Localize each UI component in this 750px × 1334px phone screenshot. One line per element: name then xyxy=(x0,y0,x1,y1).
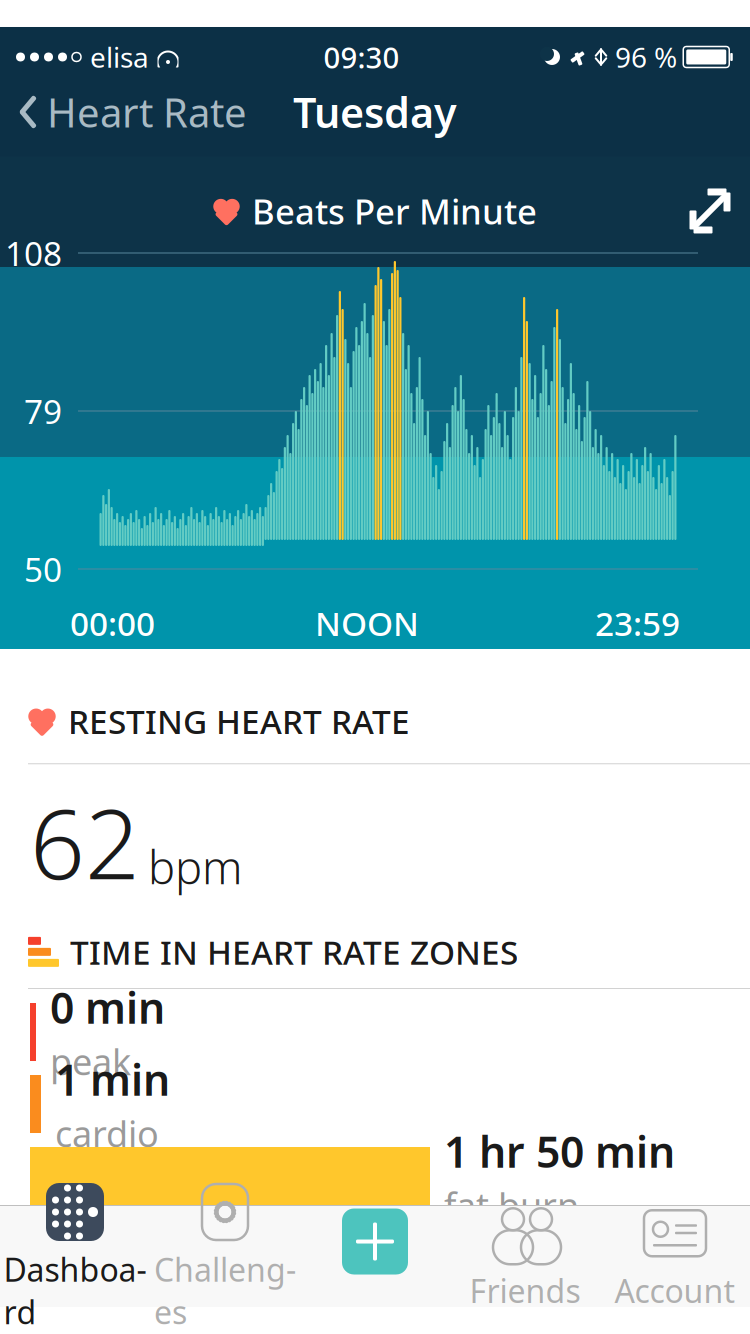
staticText: Challenges xyxy=(154,1248,296,1333)
staticText: 00:00 xyxy=(70,601,155,645)
button[interactable]: Account xyxy=(600,1193,750,1320)
staticText: peak xyxy=(50,1037,131,1085)
button[interactable]: Heart Rate xyxy=(0,77,247,146)
staticText: elisa xyxy=(90,38,149,76)
staticText: Beats Per Minute xyxy=(252,188,537,234)
staticText: bpm xyxy=(148,836,243,897)
staticText: cardio xyxy=(55,1109,159,1157)
staticText: Heart Rate xyxy=(47,85,247,138)
button[interactable]: Challenges xyxy=(150,1172,300,1334)
staticText: 1 min xyxy=(55,1051,170,1107)
staticText: 108 xyxy=(5,231,62,275)
button[interactable]: Add xyxy=(300,1201,450,1311)
staticText: Friends xyxy=(469,1269,580,1312)
staticText: 62 xyxy=(30,778,140,906)
staticText: 50 xyxy=(24,547,62,591)
staticText: 09:30 xyxy=(323,37,399,76)
staticText: 23:59 xyxy=(595,601,680,645)
staticText: RESTING HEART RATE xyxy=(68,699,410,743)
staticText: Tuesday xyxy=(293,84,457,139)
staticText: TIME IN HEART RATE ZONES xyxy=(70,930,518,974)
staticText: Account xyxy=(614,1269,735,1312)
staticText: 96 % xyxy=(615,38,677,76)
staticText: Dashboard xyxy=(3,1248,146,1333)
staticText: fat burn xyxy=(444,1181,579,1229)
staticText: 1 hr 50 min xyxy=(444,1123,675,1179)
button[interactable]: Friends xyxy=(450,1193,600,1320)
button[interactable]: Expand chart xyxy=(688,183,750,239)
staticText: NOON xyxy=(315,601,419,645)
staticText: 0 min xyxy=(50,979,165,1035)
staticText: 79 xyxy=(24,389,62,433)
button[interactable]: Dashboard xyxy=(0,1172,150,1334)
